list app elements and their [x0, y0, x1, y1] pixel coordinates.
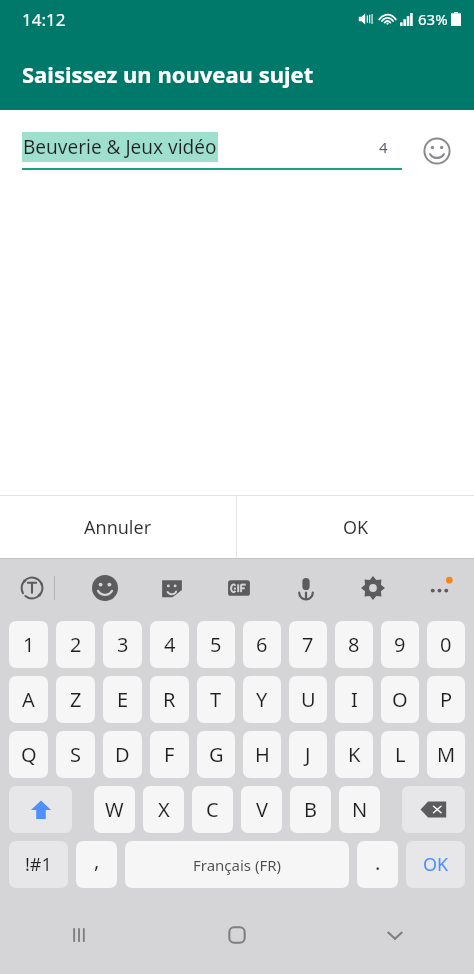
button[interactable]: . [357, 841, 398, 888]
button[interactable]: Annuler [0, 496, 236, 558]
staticText: OK [423, 852, 449, 877]
button[interactable]: S [56, 731, 95, 778]
staticText: E [117, 686, 129, 713]
button[interactable]: N [339, 786, 380, 833]
staticText: N [352, 796, 368, 823]
button[interactable]: X [143, 786, 184, 833]
staticText: J [305, 741, 311, 768]
staticText: 7 [302, 631, 314, 658]
staticText: O [392, 686, 408, 713]
button[interactable]: GIF [219, 568, 259, 608]
staticText: 5 [210, 631, 222, 658]
button[interactable]: Y [243, 676, 281, 723]
button[interactable]: Z [56, 676, 95, 723]
button[interactable]: A [9, 676, 48, 723]
staticText: P [440, 686, 453, 713]
staticText: 1 [23, 631, 35, 658]
button[interactable]: L [381, 731, 419, 778]
button[interactable]: F [150, 731, 189, 778]
staticText: G [209, 741, 224, 768]
button[interactable]: B [290, 786, 331, 833]
button[interactable]: O [381, 676, 419, 723]
button[interactable]: H [243, 731, 281, 778]
button[interactable]: 3 [103, 621, 142, 668]
staticText: . [375, 849, 381, 876]
staticText: Beuverie & Jeux vidéo [23, 134, 217, 160]
staticText: V [256, 796, 268, 823]
button[interactable]: R [150, 676, 189, 723]
button[interactable]: G [197, 731, 235, 778]
staticText: 14:12 [22, 8, 66, 31]
button[interactable]: P [427, 676, 465, 723]
staticText: R [163, 686, 176, 713]
button[interactable]: OK [406, 841, 465, 888]
staticText: D [115, 741, 130, 768]
staticText: I [351, 686, 358, 713]
button[interactable]: More options [420, 568, 460, 608]
staticText: 3 [117, 631, 129, 658]
button[interactable]: 8 [335, 621, 373, 668]
button[interactable]: V [241, 786, 282, 833]
button[interactable]: Settings [353, 568, 393, 608]
staticText: 0 [440, 631, 452, 658]
staticText: 4 [164, 631, 176, 658]
staticText: L [395, 741, 406, 768]
staticText: , [94, 847, 100, 874]
button[interactable]: 6 [243, 621, 281, 668]
button[interactable]: 5 [197, 621, 235, 668]
button[interactable]: 0 [427, 621, 465, 668]
button[interactable]: I [335, 676, 373, 723]
button[interactable]: Shift [9, 786, 72, 833]
button[interactable]: 7 [289, 621, 327, 668]
button[interactable]: Q [9, 731, 48, 778]
staticText: A [22, 686, 35, 713]
staticText: Saisissez un nouveau sujet [22, 59, 314, 89]
button[interactable]: K [335, 731, 373, 778]
button[interactable]: M [427, 731, 465, 778]
button[interactable]: Hide keyboard [316, 895, 474, 974]
staticText: 6 [256, 631, 268, 658]
staticText: 4 [379, 137, 388, 157]
button[interactable]: Recents [0, 895, 158, 974]
staticText: W [105, 796, 124, 823]
staticText: Annuler [84, 515, 152, 540]
staticText: F [164, 741, 175, 768]
button[interactable]: Home [158, 895, 316, 974]
button[interactable]: Stickers [152, 568, 192, 608]
button[interactable]: , [76, 841, 117, 888]
button[interactable]: T [197, 676, 235, 723]
staticText: 63% [418, 9, 448, 29]
button[interactable]: W [94, 786, 135, 833]
button[interactable]: Backspace [402, 786, 465, 833]
button[interactable]: C [192, 786, 233, 833]
staticText: H [255, 741, 270, 768]
staticText: Z [70, 686, 82, 713]
staticText: Y [256, 686, 268, 713]
button[interactable]: Translate [12, 568, 52, 608]
button[interactable]: J [289, 731, 327, 778]
staticText: 9 [394, 631, 406, 658]
button[interactable]: Emoji [416, 130, 458, 172]
staticText: OK [343, 515, 369, 540]
staticText: Français (FR) [193, 855, 282, 875]
button[interactable]: 1 [9, 621, 48, 668]
button[interactable]: !#1 [9, 841, 68, 888]
staticText: 2 [70, 631, 82, 658]
button[interactable]: 4 [150, 621, 189, 668]
button[interactable]: E [103, 676, 142, 723]
button[interactable]: Emoji [85, 568, 125, 608]
button[interactable]: Français (FR) [125, 841, 349, 888]
button[interactable]: 2 [56, 621, 95, 668]
staticText: M [437, 741, 456, 768]
button[interactable]: U [289, 676, 327, 723]
button[interactable]: 9 [381, 621, 419, 668]
staticText: T [210, 686, 222, 713]
staticText: !#1 [25, 852, 52, 877]
staticText: Q [21, 741, 37, 768]
staticText: B [304, 796, 317, 823]
staticText: S [70, 741, 81, 768]
button[interactable]: D [103, 731, 142, 778]
staticText: C [206, 796, 219, 823]
button[interactable]: OK [237, 496, 474, 558]
button[interactable]: Voice input [286, 568, 326, 608]
